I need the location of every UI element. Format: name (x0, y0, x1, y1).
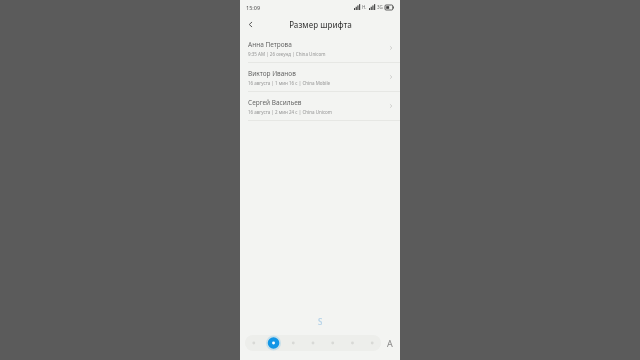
staticText: A (387, 337, 393, 349)
button[interactable]: Анна Петрова (240, 34, 400, 62)
staticText: 9:35 AM | 26 секунд | China Unicom (248, 51, 326, 57)
staticText: Анна Петрова (248, 40, 292, 49)
button[interactable]: A (385, 335, 395, 351)
button[interactable]: Виктор Иванов (240, 63, 400, 91)
staticText: 3G (377, 4, 383, 10)
staticText: Размер шрифта (289, 19, 352, 30)
button[interactable]: Back (240, 14, 260, 34)
staticText: S (318, 316, 323, 327)
button[interactable]: Сергей Васильев (240, 92, 400, 120)
button[interactable]: Font size slider (245, 335, 381, 351)
staticText: 15:09 (246, 4, 261, 11)
staticText: 16 августа | 2 мин 24 с | China Unicom (248, 109, 332, 115)
staticText: Сергей Васильев (248, 98, 302, 107)
staticText: H. (362, 4, 367, 10)
staticText: Виктор Иванов (248, 69, 296, 78)
staticText: 16 августа | 1 мин 16 с | China Mobile (248, 80, 331, 86)
